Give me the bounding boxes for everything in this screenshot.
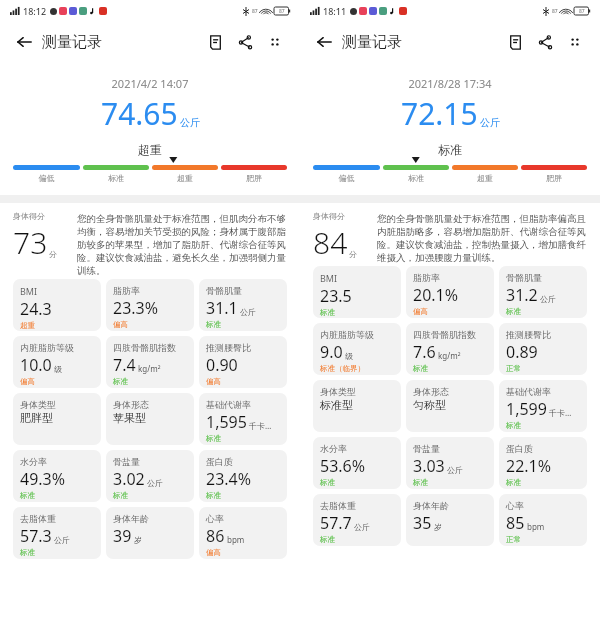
staticText: 57.7 <box>320 512 352 534</box>
staticText: 肥胖 <box>521 173 587 183</box>
button[interactable]: Back <box>10 28 38 56</box>
staticText: 身体类型 <box>320 386 356 397</box>
button[interactable]: 心率 <box>499 494 587 546</box>
staticText: 7.4 <box>113 354 136 376</box>
staticText: 公斤 <box>54 535 70 545</box>
button[interactable]: 身体类型 <box>313 380 401 432</box>
staticText: 苹果型 <box>113 411 146 425</box>
staticText: 87 <box>552 8 558 15</box>
button[interactable]: 基础代谢率 <box>499 380 587 432</box>
button[interactable]: 蛋白质 <box>199 450 287 502</box>
button[interactable]: More options <box>560 27 590 57</box>
staticText: 骨盐量 <box>413 443 440 454</box>
staticText: 超重 <box>152 173 218 183</box>
staticText: 公斤 <box>147 478 163 488</box>
button[interactable]: 四肢骨骼肌指数 <box>406 323 494 375</box>
staticText: 推测腰臀比 <box>506 329 551 340</box>
staticText: 18:12 <box>23 5 47 17</box>
staticText: 57.3 <box>20 525 52 547</box>
button[interactable]: BMI <box>13 279 101 331</box>
staticText: 1,599 <box>506 398 547 420</box>
staticText: 73 <box>13 222 48 263</box>
button[interactable]: 身体年龄 <box>406 494 494 546</box>
staticText: 74.65 <box>101 93 178 134</box>
button[interactable]: 身体年龄 <box>106 507 194 559</box>
staticText: 内脏脂肪等级 <box>20 342 74 353</box>
staticText: 标准 <box>300 142 600 157</box>
staticText: 标准 <box>113 491 128 500</box>
staticText: 内脏脂肪等级 <box>320 329 374 340</box>
staticText: 肥胖型 <box>20 411 53 425</box>
button[interactable]: Records <box>200 27 230 57</box>
button[interactable]: 推测腰臀比 <box>499 323 587 375</box>
staticText: 分 <box>349 249 357 259</box>
staticText: 四肢骨骼肌指数 <box>413 329 476 340</box>
staticText: 测量记录 <box>342 33 402 52</box>
button[interactable]: 身体形态 <box>406 380 494 432</box>
staticText: 标准 <box>20 548 35 557</box>
button[interactable]: Share <box>230 27 260 57</box>
staticText: 身体得分 <box>13 211 45 221</box>
staticText: 超重 <box>452 173 518 183</box>
button[interactable]: 身体形态 <box>106 393 194 445</box>
staticText: 标准（临界） <box>320 364 365 373</box>
staticText: 85 <box>506 512 525 534</box>
staticText: 基础代谢率 <box>206 399 251 410</box>
staticText: 标准 <box>413 364 428 373</box>
button[interactable]: 去脂体重 <box>313 494 401 546</box>
button[interactable]: 蛋白质 <box>499 437 587 489</box>
staticText: 身体形态 <box>113 399 149 410</box>
staticText: 骨骼肌量 <box>506 272 542 283</box>
staticText: 水分率 <box>20 456 47 467</box>
button[interactable]: 骨盐量 <box>406 437 494 489</box>
button[interactable]: 推测腰臀比 <box>199 336 287 388</box>
staticText: 9.0 <box>320 341 343 363</box>
staticText: 公斤 <box>480 116 500 129</box>
staticText: 1,595 <box>206 411 247 433</box>
staticText: 标准 <box>383 173 449 183</box>
staticText: 推测腰臀比 <box>206 342 251 353</box>
staticText: 87 <box>252 8 258 15</box>
button[interactable]: Share <box>530 27 560 57</box>
button[interactable]: 内脏脂肪等级 <box>13 336 101 388</box>
button[interactable]: 水分率 <box>313 437 401 489</box>
button[interactable]: 四肢骨骼肌指数 <box>106 336 194 388</box>
staticText: 3.02 <box>113 468 145 490</box>
staticText: 偏高 <box>113 320 128 329</box>
staticText: 正常 <box>506 364 521 373</box>
staticText: 标准 <box>113 377 128 386</box>
button[interactable]: 脂肪率 <box>406 266 494 318</box>
staticText: 偏高 <box>206 548 221 557</box>
staticText: 肥胖 <box>221 173 287 183</box>
button[interactable]: Back <box>310 28 338 56</box>
staticText: 测量记录 <box>42 33 102 52</box>
staticText: 标准 <box>320 308 335 317</box>
button[interactable]: 脂肪率 <box>106 279 194 331</box>
staticText: 身体年龄 <box>413 500 449 511</box>
staticText: 23.5 <box>320 285 352 307</box>
button[interactable]: 骨骼肌量 <box>199 279 287 331</box>
staticText: 31.2 <box>506 284 538 306</box>
button[interactable]: 骨盐量 <box>106 450 194 502</box>
staticText: 身体形态 <box>413 386 449 397</box>
staticText: BMI <box>320 272 338 284</box>
button[interactable]: 水分率 <box>13 450 101 502</box>
staticText: 心率 <box>206 513 224 524</box>
staticText: 基础代谢率 <box>506 386 551 397</box>
button[interactable]: More options <box>260 27 290 57</box>
button[interactable]: 去脂体重 <box>13 507 101 559</box>
staticText: 3.03 <box>413 455 445 477</box>
staticText: 标准 <box>320 478 335 487</box>
button[interactable]: 身体类型 <box>13 393 101 445</box>
button[interactable]: 内脏脂肪等级 <box>313 323 401 375</box>
button[interactable]: 心率 <box>199 507 287 559</box>
staticText: 超重 <box>20 321 35 330</box>
staticText: 去脂体重 <box>320 500 356 511</box>
button[interactable]: BMI <box>313 266 401 318</box>
staticText: 骨盐量 <box>113 456 140 467</box>
staticText: 标准 <box>20 491 35 500</box>
button[interactable]: 骨骼肌量 <box>499 266 587 318</box>
button[interactable]: 基础代谢率 <box>199 393 287 445</box>
button[interactable]: Records <box>500 27 530 57</box>
staticText: 2021/4/2 14:07 <box>0 76 300 91</box>
